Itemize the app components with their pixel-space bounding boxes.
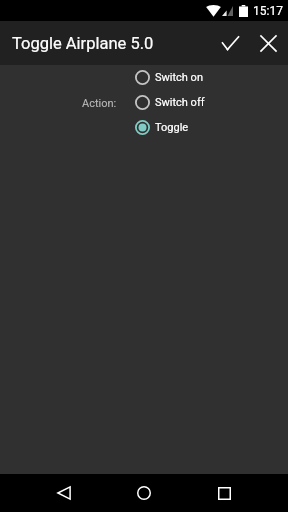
staticText: Toggle Airplane 5.0 [12, 34, 154, 53]
button[interactable]: Recents [204, 474, 244, 512]
button[interactable]: Switch off [132, 90, 205, 115]
staticText: 15:17 [253, 4, 283, 18]
button[interactable]: Home [124, 474, 164, 512]
button[interactable]: Done [208, 21, 253, 65]
button[interactable]: Toggle [132, 115, 189, 140]
button[interactable]: Back [44, 474, 84, 512]
button[interactable]: Switch on [132, 65, 203, 90]
staticText: Toggle [155, 121, 189, 134]
staticText: Switch off [155, 96, 205, 109]
staticText: Switch on [155, 71, 203, 84]
button[interactable]: Close [253, 21, 284, 65]
staticText: Action: [82, 97, 117, 110]
